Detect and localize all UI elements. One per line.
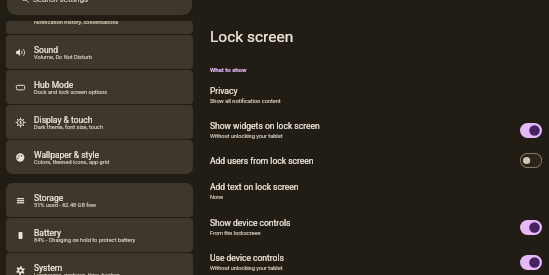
button[interactable]: Hub Mode	[6, 70, 193, 104]
button[interactable]: Sound	[6, 35, 193, 69]
staticText: Show device controls	[210, 218, 291, 228]
button[interactable]: On	[520, 220, 542, 235]
staticText: Privacy	[210, 86, 238, 96]
staticText: Search settings	[33, 0, 89, 4]
button[interactable]: On	[520, 123, 542, 138]
staticText: Dock and lock screen options	[34, 89, 108, 96]
staticText: Without unlocking your tablet	[210, 133, 283, 140]
staticText: What to show	[210, 66, 247, 73]
button[interactable]: On	[520, 255, 542, 270]
staticText: Storage	[34, 193, 64, 203]
staticText: Lock screen	[210, 28, 294, 46]
button[interactable]: Battery	[6, 218, 193, 252]
staticText: Add users from lock screen	[210, 156, 314, 166]
button[interactable]: Privacy	[210, 78, 549, 113]
staticText: Hub Mode	[34, 80, 74, 90]
staticText: Languages, gestures, time, backup	[34, 272, 120, 275]
staticText: Display & touch	[34, 115, 93, 125]
staticText: None	[210, 194, 224, 201]
staticText: From the lockscreen	[210, 230, 261, 237]
staticText: Use device controls	[210, 253, 284, 263]
button[interactable]: System	[6, 253, 193, 275]
button[interactable]: Notifications	[6, 21, 193, 34]
staticText: Dark theme, font size, touch	[34, 124, 104, 131]
button[interactable]: Search	[7, 0, 192, 15]
button[interactable]: Display & touch	[6, 105, 193, 139]
button[interactable]: Show widgets on lock screen	[210, 113, 549, 148]
staticText: Notification history, conversations	[34, 21, 119, 26]
button[interactable]: Add users from lock screen	[210, 148, 549, 173]
button[interactable]: Show device controls	[210, 210, 549, 245]
staticText: Show all notification content	[210, 98, 281, 105]
staticText: Volume, Do Not Disturb	[34, 54, 92, 61]
button[interactable]: Add text on lock screen	[210, 173, 549, 210]
staticText: Show widgets on lock screen	[210, 121, 320, 131]
staticText: Battery	[34, 228, 61, 238]
staticText: System	[34, 263, 63, 273]
staticText: Sound	[34, 45, 59, 55]
button[interactable]: Storage	[6, 183, 193, 217]
staticText: Wallpaper & style	[34, 150, 99, 160]
other: Search	[21, 0, 29, 3]
staticText: Add text on lock screen	[210, 182, 299, 192]
button[interactable]: Off	[520, 153, 542, 168]
staticText: Without unlocking your tablet	[210, 265, 283, 272]
staticText: 84% - Charging on hold to protect batter…	[34, 237, 136, 244]
button[interactable]: Wallpaper & style	[6, 140, 193, 174]
button[interactable]: Use device controls	[210, 245, 549, 275]
staticText: Colors, themed icons, app grid	[34, 159, 110, 166]
staticText: 51% used - 62.48 GB free	[34, 202, 97, 209]
